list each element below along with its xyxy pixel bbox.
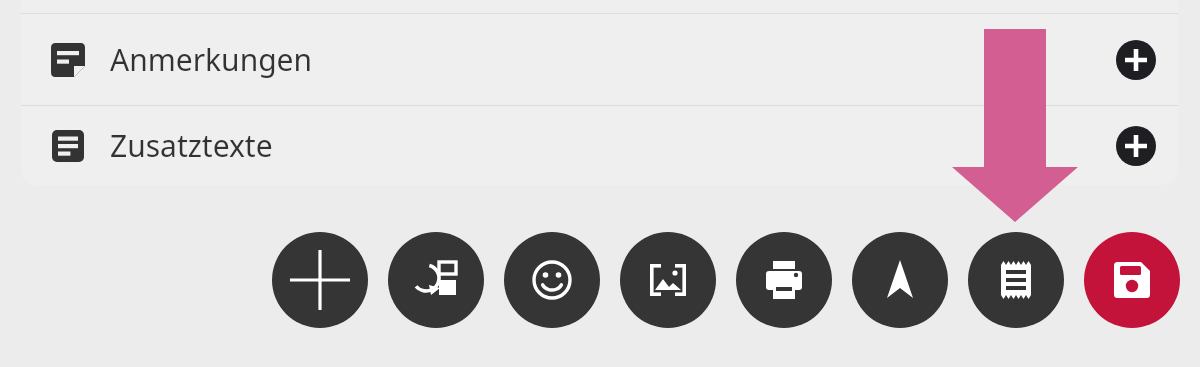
button[interactable]: Navigate [852, 232, 948, 328]
staticText: Zusatztexte [110, 125, 273, 166]
button[interactable]: Add Zusatztexte [1106, 116, 1166, 176]
button[interactable]: Add [272, 232, 368, 328]
button[interactable]: Zusatztexte [21, 106, 1178, 185]
button[interactable]: Anmerkungen [21, 14, 1178, 105]
button[interactable]: Print [736, 232, 832, 328]
button[interactable]: Save [1084, 232, 1180, 328]
staticText: Anmerkungen [110, 39, 313, 80]
button[interactable]: Receipt [968, 232, 1064, 328]
button[interactable]: Add Anmerkungen [1106, 30, 1166, 90]
button[interactable]: Emoji [504, 232, 600, 328]
button[interactable]: Rearrange [388, 232, 484, 328]
button[interactable]: Image [620, 232, 716, 328]
